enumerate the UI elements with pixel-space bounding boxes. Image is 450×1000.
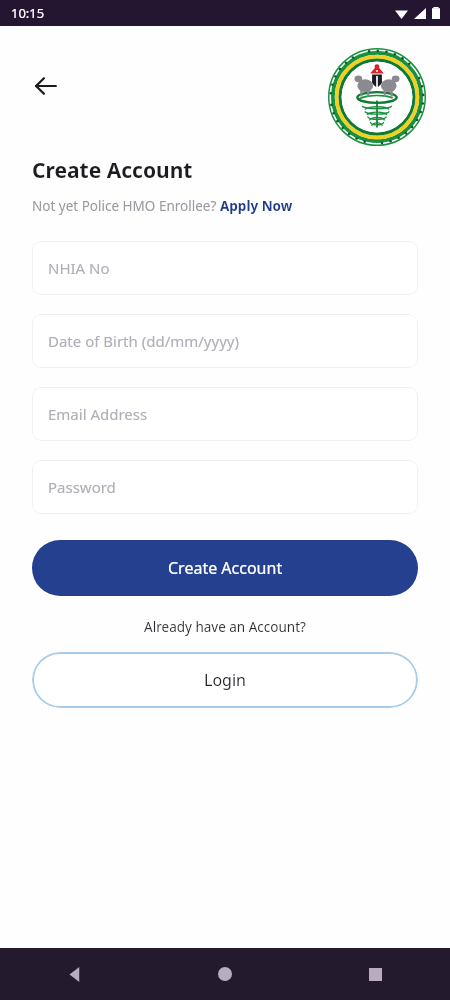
button[interactable]: Home bbox=[150, 948, 300, 1000]
staticText: Not yet Police HMO Enrollee? bbox=[32, 197, 220, 215]
button[interactable]: Back bbox=[0, 948, 150, 1000]
button[interactable]: Password bbox=[32, 460, 418, 514]
staticText: Create Account bbox=[32, 156, 193, 185]
staticText: Already have an Account? bbox=[0, 618, 450, 636]
staticText: Login bbox=[204, 669, 246, 691]
staticText: Email Address bbox=[48, 404, 148, 424]
staticText: Apply Now bbox=[220, 197, 293, 215]
button[interactable]: Back bbox=[20, 60, 72, 112]
button[interactable]: Recent apps bbox=[300, 948, 450, 1000]
button[interactable]: Create Account bbox=[32, 540, 418, 596]
staticText: Date of Birth (dd/mm/yyyy) bbox=[48, 331, 239, 351]
staticText: Create Account bbox=[168, 557, 283, 579]
button[interactable]: Email Address bbox=[32, 387, 418, 441]
staticText: Password bbox=[48, 477, 116, 497]
button[interactable]: NHIA No bbox=[32, 241, 418, 295]
button[interactable]: Apply Now bbox=[220, 197, 293, 215]
button[interactable]: Date of Birth (dd/mm/yyyy) bbox=[32, 314, 418, 368]
staticText: NHIA No bbox=[48, 258, 110, 278]
staticText: 10:15 bbox=[11, 4, 45, 22]
button[interactable]: Login bbox=[32, 652, 418, 708]
